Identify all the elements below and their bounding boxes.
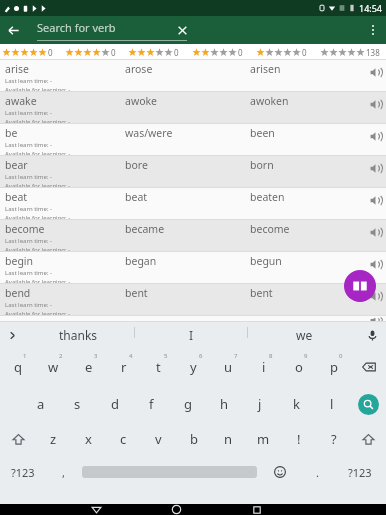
button[interactable]: Dictionary	[344, 270, 376, 302]
button[interactable]: awake	[0, 92, 386, 124]
button[interactable]: beat	[0, 188, 386, 220]
button[interactable]: arise	[0, 60, 386, 92]
button[interactable]: d	[96, 386, 133, 422]
button[interactable]: Play pronunciation	[364, 221, 386, 243]
button[interactable]: Play pronunciation	[364, 157, 386, 179]
button[interactable]: x	[71, 422, 106, 456]
button[interactable]: h	[206, 386, 242, 422]
staticText: r	[121, 358, 127, 376]
button[interactable]: 0	[192, 47, 256, 58]
button[interactable]: s	[59, 386, 96, 422]
staticText: u	[224, 358, 233, 376]
button[interactable]: Expand suggestions	[2, 325, 22, 345]
button[interactable]: f	[133, 386, 170, 422]
button[interactable]: Shift	[0, 422, 36, 456]
button[interactable]: Search for verb	[37, 20, 187, 41]
staticText: d	[111, 395, 119, 413]
button[interactable]: 0	[2, 47, 65, 58]
staticText: beaten	[250, 190, 285, 204]
button[interactable]: Play pronunciation	[364, 285, 386, 307]
button[interactable]: g	[170, 386, 206, 422]
button[interactable]: Back	[0, 17, 26, 43]
button[interactable]: k	[278, 386, 314, 422]
staticText: h	[220, 395, 229, 413]
button[interactable]: p	[316, 348, 351, 386]
button[interactable]: we	[248, 327, 360, 343]
button[interactable]: bend	[0, 284, 386, 316]
button[interactable]: v	[141, 422, 176, 456]
staticText: 1	[23, 352, 27, 360]
staticText: k	[293, 395, 300, 413]
button[interactable]: i	[246, 348, 281, 386]
button[interactable]: Play pronunciation	[364, 61, 386, 83]
staticText: began	[125, 254, 157, 268]
button[interactable]: Search	[350, 386, 386, 422]
staticText: awake	[5, 94, 37, 108]
button[interactable]: Play pronunciation	[364, 93, 386, 115]
button[interactable]: b	[176, 422, 211, 456]
button[interactable]: m	[246, 422, 281, 456]
button[interactable]: ?123	[0, 456, 46, 488]
button[interactable]: Home	[163, 504, 190, 515]
button[interactable]: Back	[83, 504, 110, 515]
staticText: q	[14, 358, 22, 376]
button[interactable]: bear	[0, 156, 386, 188]
button[interactable]: begin	[0, 252, 386, 284]
button[interactable]: l	[314, 386, 350, 422]
button[interactable]: be	[0, 124, 386, 156]
button[interactable]: Comma	[46, 456, 80, 488]
button[interactable]: c	[106, 422, 141, 456]
button[interactable]: j	[242, 386, 278, 422]
button[interactable]: o	[281, 348, 316, 386]
button[interactable]: Voice input	[362, 325, 382, 345]
staticText: arisen	[250, 62, 281, 76]
staticText: be	[5, 126, 18, 140]
staticText: i	[262, 358, 266, 376]
staticText: 4	[129, 352, 133, 360]
button[interactable]: u	[211, 348, 246, 386]
button[interactable]: q	[0, 348, 36, 386]
button[interactable]: bet	[0, 316, 386, 322]
button[interactable]: Play pronunciation	[364, 317, 386, 323]
staticText: begun	[250, 254, 282, 268]
button[interactable]: w	[36, 348, 71, 386]
button[interactable]: 138	[320, 47, 384, 58]
button[interactable]: 0	[128, 47, 192, 58]
button[interactable]: z	[36, 422, 71, 456]
staticText: b	[190, 430, 198, 448]
button[interactable]: 0	[65, 47, 128, 58]
staticText: bent	[125, 286, 148, 300]
staticText: y	[190, 358, 197, 376]
staticText: 0	[302, 47, 307, 58]
button[interactable]: Clear search	[170, 18, 194, 42]
button[interactable]: e	[71, 348, 106, 386]
button[interactable]: 0	[256, 47, 320, 58]
button[interactable]: r	[106, 348, 141, 386]
button[interactable]: y	[176, 348, 211, 386]
staticText: I	[189, 327, 194, 343]
button[interactable]: t	[141, 348, 176, 386]
button[interactable]: I	[135, 327, 247, 343]
button[interactable]: Play pronunciation	[364, 189, 386, 211]
button[interactable]: More options	[360, 17, 386, 43]
staticText: arose	[125, 62, 153, 76]
button[interactable]: Play pronunciation	[364, 253, 386, 275]
button[interactable]: a	[22, 386, 59, 422]
button[interactable]: ?	[316, 422, 351, 456]
button[interactable]: Period	[300, 456, 334, 488]
button[interactable]: !	[281, 422, 316, 456]
staticText: Last learn time: -	[5, 77, 52, 85]
button[interactable]: become	[0, 220, 386, 252]
staticText: v	[155, 430, 162, 448]
button[interactable]: ?123	[334, 456, 386, 488]
button[interactable]: thanks	[22, 327, 134, 343]
button[interactable]: Backspace	[351, 348, 386, 386]
button[interactable]: Play pronunciation	[364, 125, 386, 147]
button[interactable]: Emoji	[259, 456, 300, 488]
button[interactable]: Shift	[351, 422, 386, 456]
button[interactable]: Recent apps	[243, 504, 270, 515]
staticText: 0	[48, 47, 53, 58]
button[interactable]: n	[211, 422, 246, 456]
staticText: c	[120, 430, 127, 448]
